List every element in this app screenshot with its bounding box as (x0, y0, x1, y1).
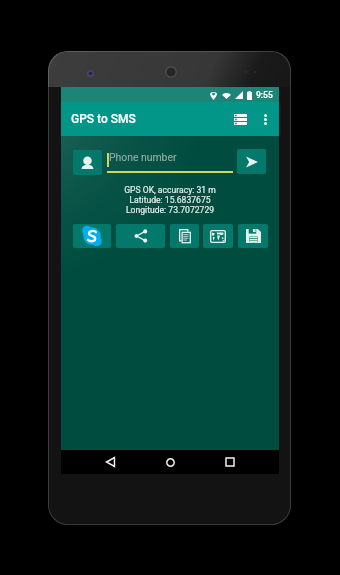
button[interactable]: Send via Skype (73, 224, 111, 248)
staticText: Phone number (109, 151, 177, 163)
staticText: 9:55 (256, 90, 273, 100)
button[interactable]: Back (99, 450, 121, 474)
staticText: GPS OK, accuracy: 31 m Latitude: 15.6837… (61, 185, 279, 215)
button[interactable]: Save (238, 224, 268, 248)
button[interactable]: Pick contact (73, 150, 102, 175)
button[interactable]: Show on map (203, 224, 233, 248)
staticText: GPS to SMS (71, 112, 136, 126)
button[interactable]: Send SMS (237, 149, 266, 174)
button[interactable]: Saved locations (229, 102, 251, 136)
button[interactable]: Home (159, 450, 181, 474)
button[interactable]: Share (116, 224, 165, 248)
button[interactable]: Recent apps (219, 450, 241, 474)
button[interactable]: Copy to clipboard (170, 224, 199, 248)
button[interactable]: More options (255, 102, 275, 136)
